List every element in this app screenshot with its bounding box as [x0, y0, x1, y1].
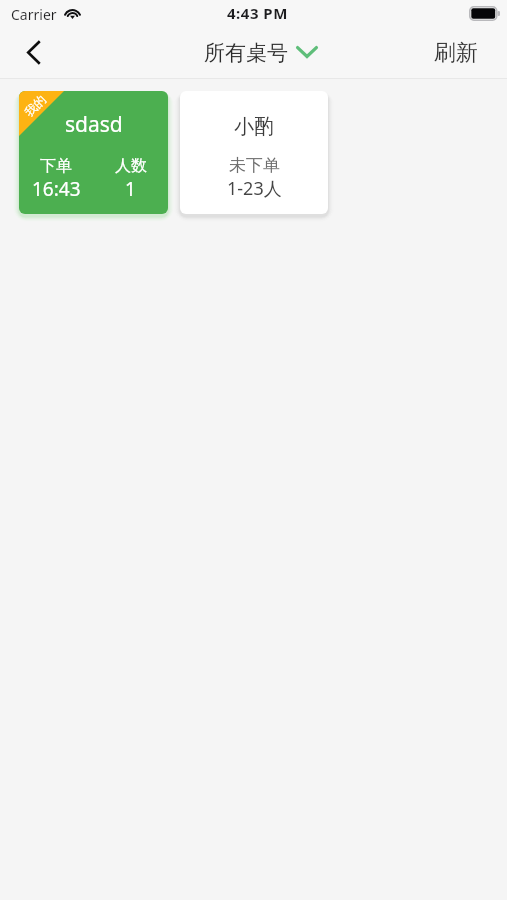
button[interactable]: 刷新 [405, 29, 507, 77]
staticText: 16:43 [32, 176, 81, 202]
staticText: 1-23人 [227, 176, 282, 201]
staticText: 1 [125, 176, 136, 202]
button[interactable]: Back [7, 27, 59, 77]
staticText: 小酌 [234, 114, 274, 139]
staticText: 下单 [40, 156, 72, 176]
staticText: Carrier [11, 5, 57, 24]
button[interactable]: 我的 [19, 91, 168, 214]
staticText: 刷新 [434, 39, 478, 67]
staticText: 我的 [21, 92, 49, 119]
staticText: 人数 [115, 156, 147, 176]
staticText: 所有桌号 [204, 40, 288, 66]
button[interactable]: 小酌 [180, 91, 328, 214]
staticText: 未下单 [229, 155, 280, 176]
button[interactable]: 所有桌号 [200, 34, 322, 72]
staticText: 4:43 PM [227, 3, 288, 23]
staticText: sdasd [65, 110, 123, 139]
